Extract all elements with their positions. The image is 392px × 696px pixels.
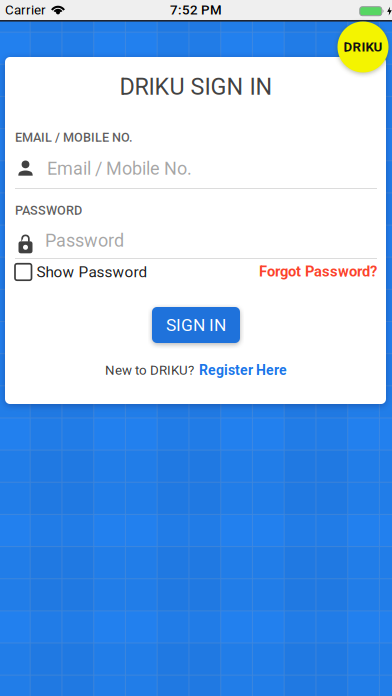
staticText: SIGN IN bbox=[166, 315, 226, 335]
staticText: PASSWORD bbox=[15, 203, 82, 218]
button[interactable]: Forgot Password? bbox=[0, 0, 377, 17]
staticText: Carrier bbox=[5, 2, 46, 18]
staticText: Password bbox=[45, 230, 124, 251]
button[interactable]: Password bbox=[15, 225, 377, 259]
staticText: Email / Mobile No. bbox=[47, 158, 192, 179]
staticText: DRIKU SIGN IN bbox=[119, 73, 272, 100]
staticText: DRIKU bbox=[343, 39, 382, 55]
staticText: EMAIL / MOBILE NO. bbox=[15, 130, 133, 145]
staticText: Show Password bbox=[36, 263, 147, 281]
button[interactable]: DRIKU bbox=[337, 21, 388, 72]
staticText: New to DRIKU? bbox=[105, 362, 194, 378]
button[interactable]: Show Password bbox=[0, 0, 132, 18]
button[interactable]: Email / Mobile No. bbox=[15, 155, 377, 189]
staticText: Forgot Password? bbox=[259, 263, 377, 280]
button[interactable]: Register Here bbox=[199, 362, 287, 378]
staticText: Register Here bbox=[199, 362, 287, 378]
button[interactable]: SIGN IN bbox=[152, 307, 240, 343]
staticText: 7:52 PM bbox=[170, 2, 222, 18]
